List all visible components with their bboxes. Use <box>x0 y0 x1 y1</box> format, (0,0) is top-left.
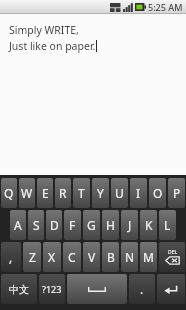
staticText: G <box>87 217 96 233</box>
staticText: O <box>153 185 163 201</box>
button[interactable]: F <box>63 209 82 241</box>
button[interactable]: E <box>36 177 54 209</box>
button[interactable]: M <box>139 241 158 273</box>
staticText: T <box>78 185 85 201</box>
button[interactable]: V <box>82 241 101 273</box>
staticText: D <box>50 217 59 233</box>
button[interactable]: 中文 <box>0 273 38 305</box>
staticText: Q <box>4 185 14 201</box>
staticText: F <box>69 217 76 233</box>
button[interactable]: Delete <box>158 241 186 273</box>
staticText: S <box>33 217 40 233</box>
staticText: X <box>48 249 56 265</box>
staticText: W <box>21 185 33 201</box>
button[interactable]: Z <box>22 241 42 273</box>
staticText: N <box>125 249 135 265</box>
staticText: J <box>128 217 132 233</box>
staticText: , <box>9 249 13 265</box>
staticText: ?123 <box>42 283 62 295</box>
staticText: L <box>164 217 171 233</box>
staticText: Simply WRITE, <box>9 23 79 37</box>
button[interactable]: Y <box>91 177 110 209</box>
staticText: E <box>42 185 49 201</box>
button[interactable]: D <box>45 209 63 241</box>
button[interactable]: J <box>120 209 139 241</box>
staticText: A <box>14 217 22 233</box>
staticText: V <box>88 249 96 265</box>
button[interactable]: R <box>54 177 72 209</box>
button[interactable]: T <box>72 177 91 209</box>
button[interactable]: H <box>101 209 120 241</box>
staticText: . <box>140 281 144 297</box>
button[interactable]: G <box>82 209 101 241</box>
button[interactable]: . <box>128 273 156 305</box>
button[interactable]: L <box>158 209 177 241</box>
staticText: Z <box>29 249 36 265</box>
button[interactable]: K <box>139 209 158 241</box>
staticText: M <box>143 249 154 265</box>
staticText: Y <box>97 185 104 201</box>
button[interactable]: C <box>62 241 82 273</box>
staticText: Just like on paper. <box>9 39 96 53</box>
button[interactable]: P <box>167 177 186 209</box>
button[interactable]: N <box>120 241 139 273</box>
button[interactable]: Enter <box>156 273 186 305</box>
button[interactable]: W <box>18 177 36 209</box>
staticText: R <box>59 185 67 201</box>
staticText: 5:25 AM <box>148 1 183 13</box>
button[interactable]: ?123 <box>38 273 66 305</box>
staticText: I <box>136 185 141 201</box>
button[interactable]: B <box>101 241 120 273</box>
staticText: H <box>106 217 115 233</box>
staticText: C <box>68 249 76 265</box>
button[interactable]: , <box>0 241 22 273</box>
staticText: P <box>173 185 181 201</box>
button[interactable]: X <box>42 241 62 273</box>
staticText: B <box>107 249 115 265</box>
staticText: 中文 <box>9 283 29 296</box>
button[interactable]: I <box>129 177 148 209</box>
button[interactable]: O <box>148 177 167 209</box>
button[interactable]: U <box>110 177 129 209</box>
button[interactable]: S <box>27 209 45 241</box>
button[interactable]: Space <box>66 273 128 305</box>
staticText: U <box>115 185 124 201</box>
staticText: DEL <box>168 249 178 256</box>
staticText: K <box>145 217 153 233</box>
button[interactable]: Q <box>0 177 18 209</box>
button[interactable]: A <box>9 209 27 241</box>
